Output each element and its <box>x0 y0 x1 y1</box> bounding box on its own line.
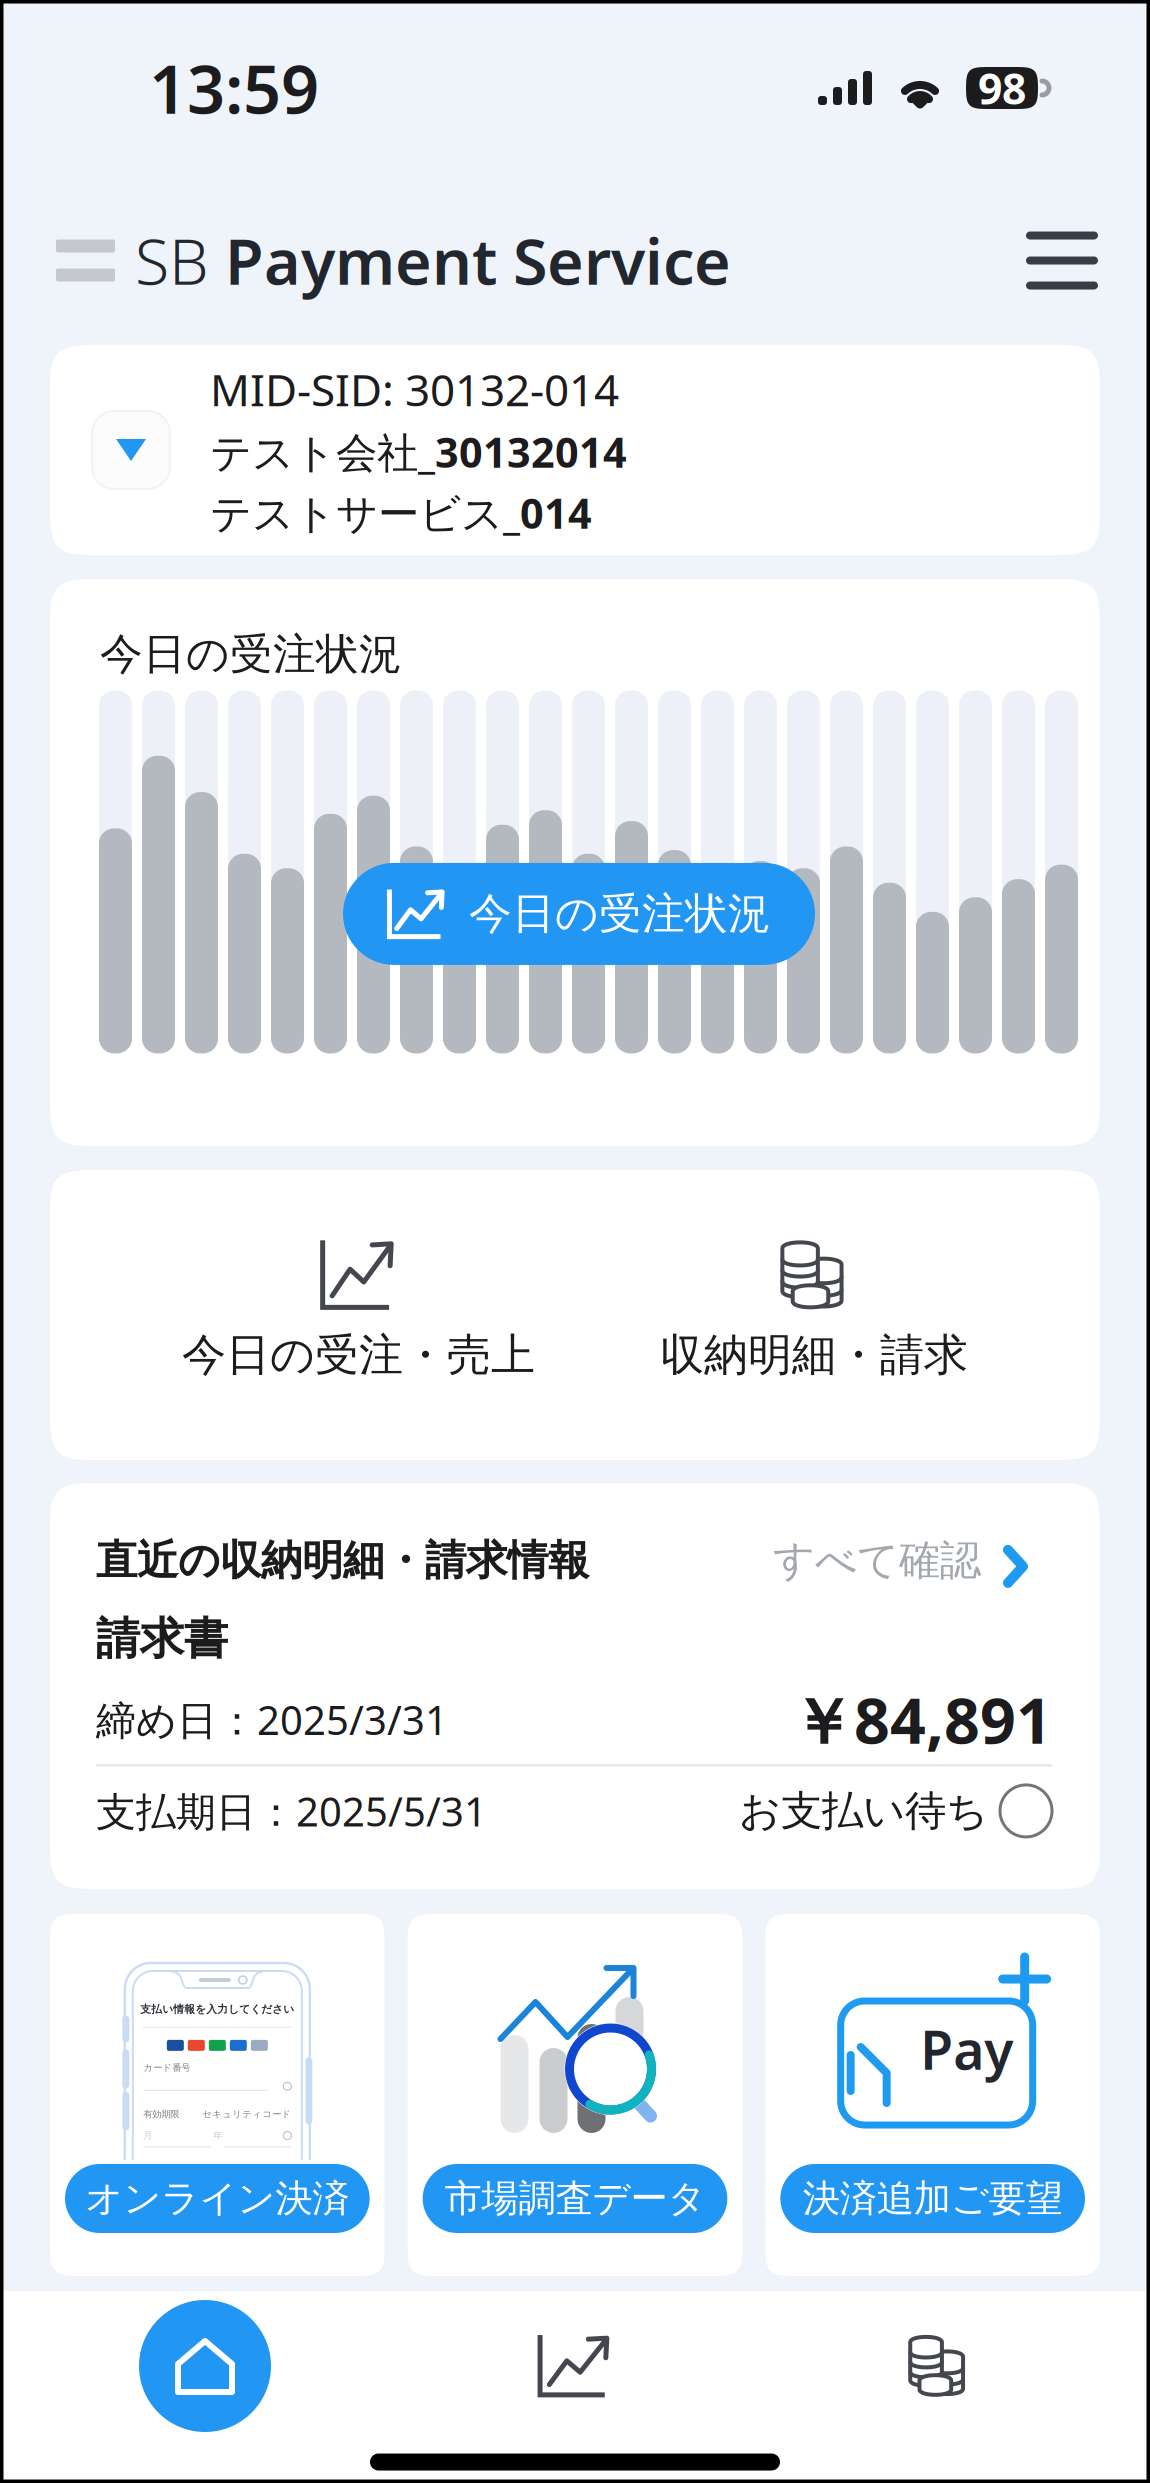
button[interactable]: 収納明細・請求 <box>660 1238 968 1382</box>
staticText: お支払い待ち <box>739 1785 988 1836</box>
staticText: 年 <box>213 2130 222 2141</box>
staticText: 有効期限 <box>143 2108 179 2120</box>
staticText: 収納明細・請求 <box>660 1328 968 1382</box>
staticText: 13:59 <box>149 44 319 132</box>
staticText: ￥84,891 <box>791 1678 1052 1761</box>
staticText: すべて確認 <box>773 1535 981 1586</box>
staticText: セキュリティコード <box>202 2108 291 2120</box>
staticText: 月 <box>143 2130 152 2141</box>
button[interactable]: 今日の受注・売上 <box>182 1238 535 1382</box>
staticText: 締め日：2025/3/31 <box>96 1693 448 1746</box>
button[interactable]: 支払い情報を入力してください <box>50 1914 385 2276</box>
staticText: 98 <box>978 60 1026 116</box>
button[interactable]: すべて確認 <box>773 1535 1052 1586</box>
staticText: 今日の受注・売上 <box>182 1328 535 1382</box>
staticText: 今日の受注状況 <box>469 888 771 940</box>
staticText: 市場調査データ <box>444 2176 705 2221</box>
staticText: テスト会社_30132014 <box>210 424 627 479</box>
staticText: 直近の収納明細・請求情報 <box>96 1535 589 1586</box>
staticText: テストサービス_014 <box>210 485 592 540</box>
button[interactable]: 市場調査データ <box>408 1914 742 2276</box>
staticText: SB <box>135 219 209 302</box>
button[interactable]: 今日の受注状況 <box>343 863 815 965</box>
staticText: MID-SID: 30132-014 <box>210 360 619 418</box>
button[interactable]: ホーム <box>20 2300 390 2432</box>
staticText: 決済追加ご要望 <box>803 2176 1063 2221</box>
button[interactable]: MID-SID: 30132-014 <box>50 345 1100 555</box>
button[interactable]: 収納明細・請求 <box>760 2300 1130 2432</box>
staticText: 支払期日：2025/5/31 <box>96 1784 487 1837</box>
button[interactable]: メニュー <box>1010 205 1114 315</box>
staticText: Pay <box>920 2014 1013 2084</box>
staticText: 今日の受注状況 <box>100 628 402 680</box>
staticText: Payment Service <box>209 219 731 302</box>
staticText: カード番号 <box>143 2062 190 2073</box>
button[interactable]: 受注・売上 <box>390 2300 760 2432</box>
button[interactable]: Pay <box>765 1914 1100 2276</box>
staticText: オンライン決済 <box>85 2176 349 2221</box>
staticText: 支払い情報を入力してください <box>140 2003 294 2016</box>
staticText: 請求書 <box>96 1612 228 1666</box>
